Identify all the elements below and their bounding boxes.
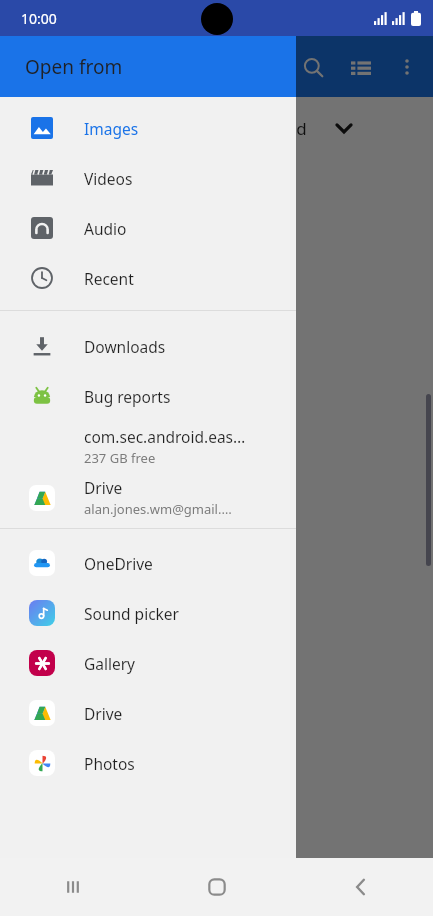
staticText: Videos [84, 168, 133, 189]
button[interactable]: Search [289, 43, 337, 91]
button[interactable]: Images [0, 103, 296, 153]
staticText: Recent [84, 268, 134, 289]
button[interactable]: Home [145, 858, 289, 916]
button[interactable]: Photos [0, 738, 296, 788]
staticText: Modified [236, 117, 307, 140]
button[interactable]: OneDrive [0, 538, 296, 588]
staticText: Bug reports [84, 386, 171, 407]
staticText: OneDrive [84, 553, 153, 574]
button[interactable]: Drive [0, 472, 296, 523]
button[interactable]: Sound picker [0, 588, 296, 638]
staticText: Audio [84, 218, 127, 239]
button[interactable]: Downloads [0, 321, 296, 371]
button[interactable]: Bug reports [0, 371, 296, 421]
staticText: Sound picker [84, 603, 179, 624]
button[interactable]: com.sec.android.eas… [0, 421, 296, 472]
button[interactable]: Recent apps [0, 858, 145, 916]
button[interactable]: Videos [0, 153, 296, 203]
button[interactable]: Audio [0, 203, 296, 253]
staticText: Open from [25, 54, 123, 80]
staticText: Gallery [84, 653, 136, 674]
staticText: Drive [84, 477, 123, 498]
staticText: Drive [84, 703, 123, 724]
staticText: Photos [84, 753, 135, 774]
staticText: alan.jones.wm@gmail.… [84, 500, 232, 518]
button[interactable]: Recent [0, 253, 296, 303]
staticText: 237 GB free [84, 449, 156, 467]
button[interactable]: More options [385, 45, 429, 89]
staticText: Images [84, 118, 139, 139]
staticText: com.sec.android.eas… [84, 426, 246, 447]
button[interactable]: Drive [0, 688, 296, 738]
button[interactable]: Open from [0, 36, 296, 97]
button[interactable]: List view [337, 43, 385, 91]
staticText: Downloads [84, 336, 166, 357]
staticText: 10:00 [21, 9, 57, 28]
button[interactable]: Gallery [0, 638, 296, 688]
button[interactable]: Back [289, 858, 433, 916]
